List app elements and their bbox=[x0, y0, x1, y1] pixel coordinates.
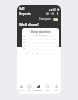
staticText: Report bbox=[35, 89, 42, 92]
staticText: Compare bbox=[39, 17, 52, 21]
button[interactable]: Report bbox=[34, 83, 43, 94]
button[interactable]: Food bbox=[43, 83, 52, 94]
button[interactable]: More options bbox=[55, 11, 60, 16]
staticText: Home bbox=[18, 89, 24, 92]
staticText: F bbox=[46, 52, 48, 55]
staticText: T bbox=[42, 52, 44, 55]
staticText: 4h bbox=[23, 41, 26, 44]
staticText: W bbox=[36, 52, 39, 55]
staticText: Well done! bbox=[19, 22, 39, 27]
staticText: Plan bbox=[27, 89, 32, 92]
staticText: 6h bbox=[23, 38, 26, 41]
staticText: Reports bbox=[19, 12, 31, 16]
staticText: 0h bbox=[23, 47, 26, 49]
button[interactable]: Share bbox=[50, 11, 55, 16]
staticText: 7h 14m avg bbox=[22, 33, 59, 36]
button[interactable]: Plan bbox=[25, 83, 34, 94]
staticText: Sleep duration bbox=[22, 30, 59, 34]
staticText: S bbox=[51, 52, 53, 55]
staticText: S bbox=[55, 52, 57, 55]
staticText: T bbox=[32, 52, 34, 55]
staticText: 8h bbox=[23, 35, 26, 38]
staticText: M bbox=[26, 52, 29, 55]
staticText: 9:41 bbox=[19, 7, 25, 11]
staticText: 2h bbox=[23, 44, 26, 47]
button[interactable]: Home bbox=[17, 83, 25, 94]
button[interactable]: Calendar bbox=[45, 11, 50, 16]
staticText: Food bbox=[45, 89, 50, 92]
button[interactable]: Me bbox=[52, 83, 61, 94]
button[interactable]: Compare bbox=[39, 17, 58, 21]
staticText: Me bbox=[55, 89, 59, 92]
